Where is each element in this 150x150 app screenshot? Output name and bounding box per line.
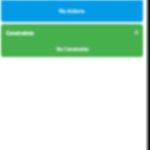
button[interactable]: No Actions (1, 0, 143, 22)
staticText: Constraints (6, 30, 34, 37)
staticText: No Actions (59, 8, 85, 15)
button[interactable]: Add constraint (131, 27, 142, 38)
staticText: No Constraints (56, 46, 89, 52)
button[interactable]: No Constraints (1, 40, 143, 57)
button[interactable]: Constraints (1, 24, 143, 40)
